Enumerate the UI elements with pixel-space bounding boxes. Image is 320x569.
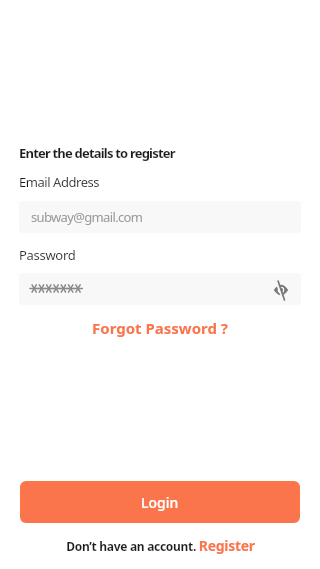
button[interactable] [19, 273, 301, 305]
button[interactable]: Login [20, 481, 300, 523]
button[interactable]: Forgot Password ? [19, 318, 301, 338]
staticText: subway@gmail.com [31, 208, 143, 226]
button[interactable]: Don’t have an account. Register [66, 536, 255, 555]
button[interactable]: subway@gmail.com [19, 201, 301, 233]
staticText: Login [141, 493, 179, 512]
staticText: Email Address [19, 173, 100, 191]
staticText: Enter the details to register [19, 144, 175, 162]
staticText: Password [19, 246, 76, 264]
button[interactable] [268, 277, 292, 301]
